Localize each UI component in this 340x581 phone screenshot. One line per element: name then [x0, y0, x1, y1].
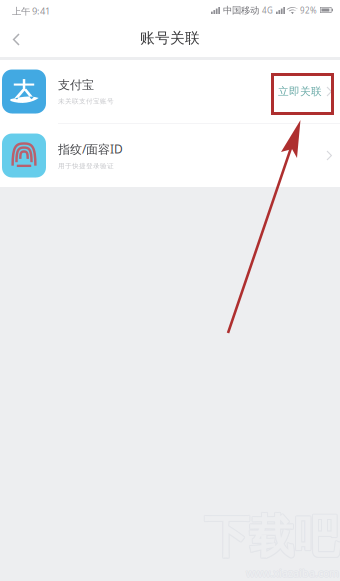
staticText: 4G [262, 5, 273, 16]
staticText: 下载吧 [204, 509, 339, 565]
button[interactable]: 支付宝 [0, 60, 340, 123]
staticText: 下载吧 [204, 510, 339, 566]
staticText: 下载吧 [205, 508, 340, 564]
staticText: 立即关联 [278, 85, 322, 98]
staticText: www.xiazaiba.com [246, 565, 339, 579]
staticText: 下载吧 [203, 510, 338, 566]
staticText: 中国移动 [223, 5, 259, 16]
staticText: 账号关联 [140, 29, 200, 47]
staticText: 下载吧 [205, 510, 340, 566]
staticText: www.xiazaiba.com [246, 566, 339, 581]
staticText: 上午 9:41 [12, 5, 50, 17]
staticText: 下载吧 [203, 509, 338, 565]
staticText: 下载吧 [204, 508, 339, 564]
staticText: 下载吧 [203, 508, 338, 564]
button[interactable]: 指纹/面容ID [0, 124, 340, 187]
staticText: www.xiazaiba.com [245, 565, 338, 579]
staticText: www.xiazaiba.com [246, 566, 339, 580]
staticText: 未关联支付宝账号 [58, 97, 114, 105]
staticText: 下载吧 [205, 509, 340, 565]
staticText: www.xiazaiba.com [245, 566, 338, 580]
staticText: 92% [300, 5, 317, 16]
staticText: www.xiazaiba.com [246, 565, 339, 579]
staticText: 用于快捷登录验证 [58, 162, 114, 170]
staticText: www.xiazaiba.com [245, 566, 338, 581]
staticText: www.xiazaiba.com [246, 566, 339, 581]
button[interactable]: Back [0, 22, 32, 57]
staticText: 指纹/面容ID [58, 141, 123, 157]
staticText: www.xiazaiba.com [247, 566, 340, 580]
staticText: 支付宝 [58, 77, 94, 92]
